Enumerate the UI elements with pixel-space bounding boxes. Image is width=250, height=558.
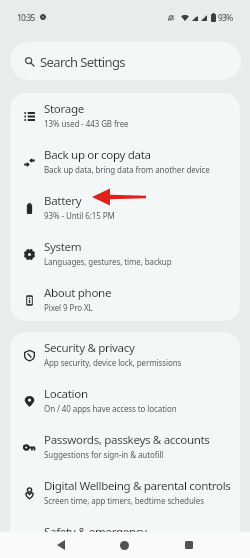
button[interactable]: Passwords, passkeys & accounts [10, 424, 240, 470]
staticText: Location [44, 386, 236, 402]
staticText: Languages, gestures, time, backup [44, 256, 240, 267]
staticText: App security, device lock, permissions [44, 357, 240, 368]
staticText: 93% [218, 12, 233, 24]
staticText: Security & privacy [44, 340, 236, 356]
button[interactable]: Recent apps [174, 532, 204, 558]
staticText: Screen time, app timers, bedtime schedul… [44, 495, 240, 506]
button[interactable]: Storage [10, 93, 240, 139]
button[interactable]: Home [109, 532, 139, 558]
staticText: Search Settings [40, 53, 125, 71]
button[interactable]: Location [10, 378, 240, 424]
staticText: Back up data, bring data from another de… [44, 164, 240, 175]
staticText: Pixel 9 Pro XL [44, 302, 240, 313]
staticText: 93% - Until 6:15 PM [44, 210, 240, 221]
staticText: Digital Wellbeing & parental controls [44, 478, 236, 494]
button[interactable]: Safety & emergency [10, 516, 240, 558]
button[interactable]: Search Settings [10, 42, 241, 80]
staticText: Battery [44, 193, 236, 209]
staticText: 13% used - 443 GB free [44, 118, 240, 129]
staticText: About phone [44, 285, 236, 301]
button[interactable]: About phone [10, 277, 240, 321]
button[interactable]: Back [46, 532, 76, 558]
staticText: 10:35 [17, 12, 35, 24]
button[interactable]: Back up or copy data [10, 139, 240, 185]
button[interactable]: Battery [10, 185, 240, 231]
staticText: Storage [44, 101, 236, 117]
staticText: Suggestions for sign-in & autofill [44, 449, 240, 460]
staticText: Emergency SOS, medical info, alerts [44, 541, 240, 552]
button[interactable]: Security & privacy [10, 332, 240, 378]
staticText: System [44, 239, 236, 255]
staticText: On / 40 apps have access to location [44, 403, 240, 414]
staticText: Safety & emergency [44, 524, 236, 540]
staticText: Passwords, passkeys & accounts [44, 432, 236, 448]
staticText: Back up or copy data [44, 147, 236, 163]
button[interactable]: System [10, 231, 240, 277]
button[interactable]: Digital Wellbeing & parental controls [10, 470, 240, 516]
